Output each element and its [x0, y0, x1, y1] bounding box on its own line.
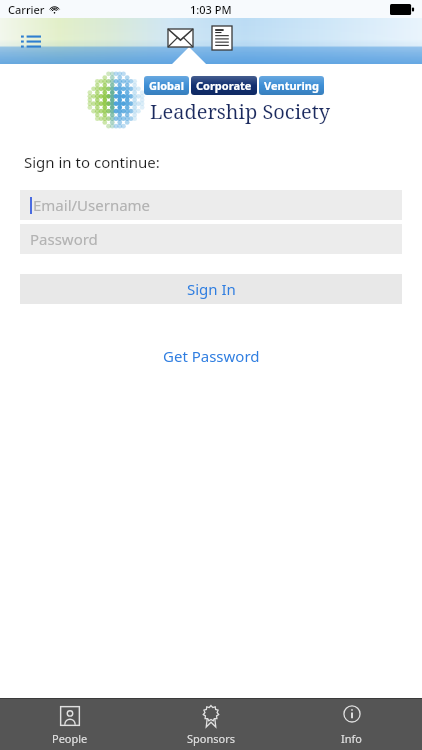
staticText: Carrier — [8, 2, 45, 17]
button[interactable]: Get Password — [143, 340, 280, 372]
staticText: Get Password — [163, 346, 260, 366]
button[interactable]: Sponsors — [140, 699, 281, 750]
staticText: Corporate — [196, 78, 252, 93]
button[interactable]: Email/Username — [20, 190, 402, 220]
button[interactable]: Documents — [204, 20, 240, 56]
staticText: Global — [149, 78, 184, 93]
staticText: People — [52, 731, 88, 746]
staticText: 1:03 PM — [190, 2, 232, 17]
staticText: Sponsors — [187, 731, 235, 746]
staticText: Sign In — [187, 279, 236, 299]
staticText: Password — [30, 229, 98, 249]
button[interactable]: Info — [281, 699, 422, 750]
staticText: Leadership Society — [150, 98, 331, 125]
staticText: Info — [341, 731, 362, 746]
staticText: Sign in to continue: — [24, 152, 160, 172]
button[interactable]: People — [0, 699, 140, 750]
button[interactable]: Messages — [162, 20, 198, 56]
staticText: Venturing — [264, 78, 319, 93]
button[interactable]: Sign In — [20, 274, 402, 304]
button[interactable]: Password — [20, 224, 402, 254]
button[interactable]: List — [14, 24, 48, 58]
staticText: Email/Username — [33, 195, 151, 215]
